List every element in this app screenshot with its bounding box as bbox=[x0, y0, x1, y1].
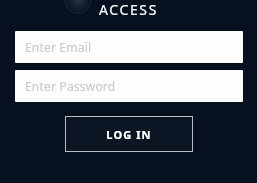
staticText: LOG IN bbox=[106, 127, 152, 142]
staticText: ACCESS bbox=[99, 0, 158, 17]
staticText: Enter Password bbox=[25, 78, 116, 94]
staticText: Enter Email bbox=[25, 39, 92, 55]
button[interactable]: Enter Email bbox=[15, 31, 243, 63]
button[interactable]: Log in bbox=[65, 116, 193, 152]
button[interactable]: Enter Password bbox=[15, 70, 243, 102]
